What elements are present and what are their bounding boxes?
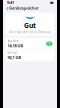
staticText: ‹	[6, 4, 8, 12]
staticText: OK	[47, 42, 51, 45]
staticText: 92,1 GB	[7, 55, 21, 60]
staticText: 14,18 GB	[7, 43, 23, 48]
button[interactable]: Back	[6, 4, 8, 12]
staticText: Speicher	[7, 39, 19, 43]
staticText: Belegt	[7, 51, 17, 54]
staticText: Gut	[24, 21, 36, 30]
staticText: Dein Speicher ist in Ordnung	[9, 30, 51, 34]
staticText: 9:41	[7, 0, 14, 5]
staticText: Gerätespeicher	[9, 5, 39, 11]
staticText: ▮▮▮	[50, 1, 53, 4]
